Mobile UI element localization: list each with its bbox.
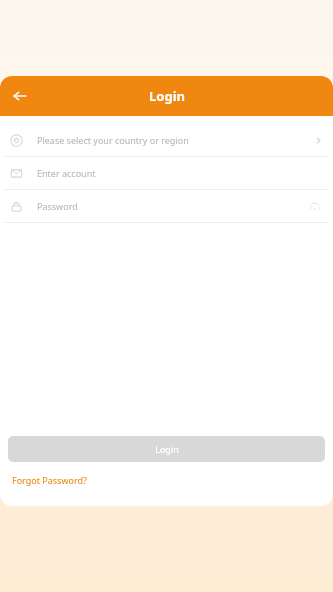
button[interactable]: Show password [307,198,323,214]
button[interactable]: Password [0,190,333,222]
button[interactable]: Please select your country or region [0,124,333,156]
button[interactable]: Forgot Password? [12,474,87,486]
staticText: Login [149,87,185,105]
staticText: Enter account [37,167,96,179]
button[interactable]: Enter account [0,157,333,189]
button[interactable]: Login [8,436,325,462]
staticText: Please select your country or region [37,134,189,146]
button[interactable]: Back [6,82,34,110]
staticText: Login [155,443,179,455]
staticText: Password [37,200,78,212]
